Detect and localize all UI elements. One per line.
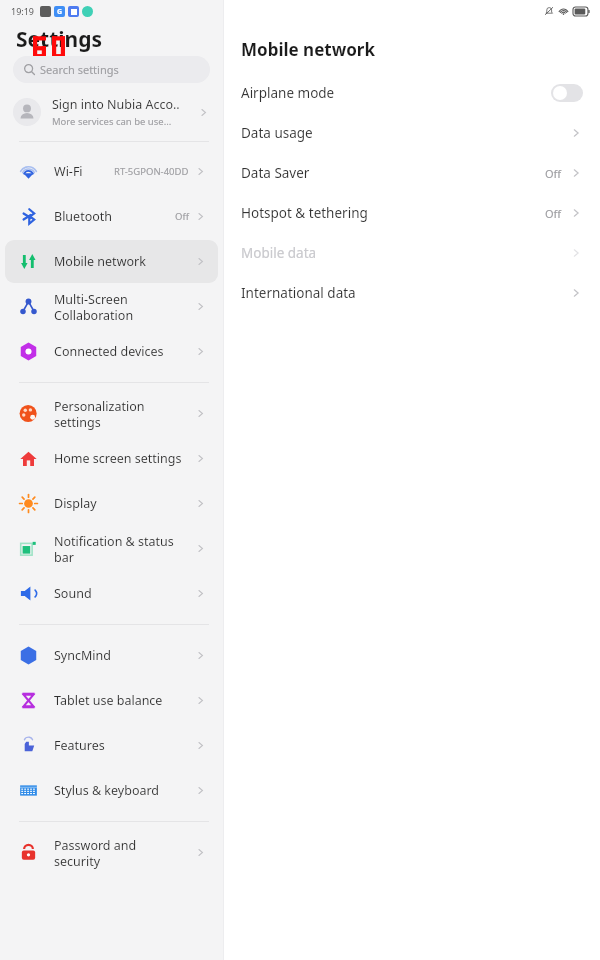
button[interactable]: Sign into Nubia Acco..	[13, 90, 210, 134]
staticText: Sound	[54, 585, 194, 602]
button[interactable]: Home screen settings	[5, 437, 218, 480]
button[interactable]: Personalization settings	[5, 392, 218, 435]
staticText: G	[57, 7, 63, 17]
staticText: RT-5GPON-40DD	[114, 165, 189, 178]
staticText: Data usage	[241, 124, 569, 142]
staticText: Display	[54, 495, 194, 512]
button[interactable]: Mobile data	[241, 233, 583, 273]
button[interactable]: Mobile network	[5, 240, 218, 283]
staticText: Airplane mode	[241, 84, 551, 102]
button[interactable]: Wi-Fi	[5, 150, 218, 193]
staticText: Wi-Fi	[54, 163, 114, 180]
button[interactable]: Stylus & keyboard	[5, 769, 218, 812]
staticText: Bluetooth	[54, 208, 175, 225]
staticText: Stylus & keyboard	[54, 782, 194, 799]
button[interactable]: Multi-Screen Collaboration	[5, 285, 218, 328]
button[interactable]: Search settings	[13, 56, 210, 83]
staticText: Settings	[16, 25, 103, 54]
button[interactable]: Connected devices	[5, 330, 218, 373]
staticText: Tablet use balance	[54, 692, 194, 709]
button[interactable]: Airplane mode toggle	[551, 84, 583, 102]
button[interactable]: Tablet use balance	[5, 679, 218, 722]
staticText: Mobile network	[54, 253, 194, 270]
staticText: Mobile network	[241, 38, 376, 61]
button[interactable]: Features	[5, 724, 218, 767]
staticText: 19:19	[11, 5, 35, 17]
staticText: Personalization settings	[54, 398, 194, 430]
button[interactable]: Sound	[5, 572, 218, 615]
staticText: Mobile data	[241, 244, 569, 262]
button[interactable]: Hotspot & tethering	[241, 193, 583, 233]
staticText: International data	[241, 284, 569, 302]
button[interactable]: International data	[241, 273, 583, 313]
staticText: Hotspot & tethering	[241, 204, 545, 222]
button[interactable]: Airplane mode	[241, 73, 583, 113]
staticText: Connected devices	[54, 343, 194, 360]
button[interactable]: Display	[5, 482, 218, 525]
staticText: Search settings	[40, 62, 119, 77]
staticText: Features	[54, 737, 194, 754]
button[interactable]: Data usage	[241, 113, 583, 153]
staticText: SyncMind	[54, 647, 194, 664]
staticText: Off	[545, 206, 562, 221]
button[interactable]: Data Saver	[241, 153, 583, 193]
staticText: Sign into Nubia Acco..	[52, 96, 180, 113]
button[interactable]: Password and security	[5, 831, 218, 874]
staticText: Off	[545, 166, 562, 181]
staticText: Password and security	[54, 837, 194, 869]
staticText: Home screen settings	[54, 450, 194, 467]
button[interactable]: SyncMind	[5, 634, 218, 677]
staticText: More services can be use...	[52, 115, 172, 128]
staticText: Off	[175, 210, 189, 223]
staticText: Notification & status bar	[54, 533, 194, 565]
staticText: Data Saver	[241, 164, 545, 182]
button[interactable]: Notification & status bar	[5, 527, 218, 570]
staticText: Multi-Screen Collaboration	[54, 291, 194, 323]
button[interactable]: Bluetooth	[5, 195, 218, 238]
